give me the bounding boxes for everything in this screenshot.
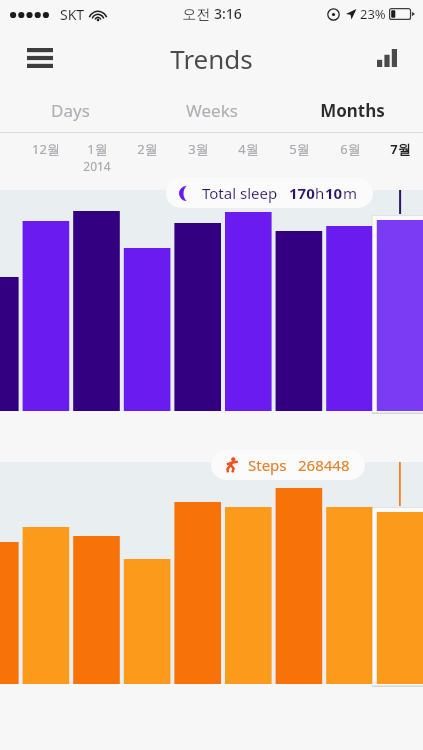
button[interactable]: Steps — [211, 450, 365, 480]
staticText: Months — [320, 99, 385, 122]
staticText: Weeks — [186, 99, 238, 122]
button[interactable]: 5월 — [274, 140, 324, 158]
staticText: 4월 — [238, 140, 259, 158]
staticText: 2014 — [83, 158, 111, 174]
staticText: 23% — [360, 5, 386, 23]
staticText: 10 — [325, 183, 343, 203]
button[interactable]: Total sleep — [166, 178, 373, 208]
button[interactable]: Days — [0, 88, 141, 132]
staticText: 268448 — [298, 455, 350, 475]
staticText: 3월 — [188, 140, 209, 158]
button[interactable]: 7월 — [375, 140, 423, 158]
staticText: 7월 — [390, 140, 411, 158]
staticText: Total sleep — [202, 183, 278, 203]
staticText: Steps — [248, 455, 287, 475]
button[interactable]: Months — [282, 88, 423, 132]
staticText: 오전 3:16 — [182, 4, 242, 23]
staticText: SKT — [60, 5, 85, 24]
staticText: m — [343, 183, 358, 203]
staticText: Trends — [170, 41, 253, 76]
button[interactable]: Menu — [18, 36, 62, 80]
button[interactable]: 6월 — [325, 140, 375, 158]
staticText: 170 — [289, 183, 315, 203]
staticText: 12월 — [32, 140, 60, 158]
button[interactable]: Weeks — [141, 88, 282, 132]
button[interactable]: Statistics — [367, 38, 407, 78]
staticText: 1월 — [87, 140, 108, 158]
staticText: 6월 — [340, 140, 361, 158]
staticText: h — [315, 183, 325, 203]
staticText: 5월 — [289, 140, 310, 158]
button[interactable]: 2월 — [122, 140, 172, 158]
staticText: Days — [51, 99, 90, 122]
button[interactable]: 4월 — [223, 140, 273, 158]
button[interactable]: 12월 — [21, 140, 71, 158]
staticText: 2월 — [137, 140, 158, 158]
button[interactable]: 1월 — [72, 140, 122, 174]
button[interactable]: 3월 — [173, 140, 223, 158]
